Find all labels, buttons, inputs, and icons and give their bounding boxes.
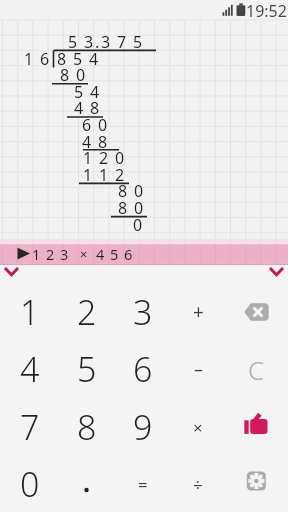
staticText: C (248, 352, 265, 387)
staticText: 0 (134, 180, 144, 202)
staticText: + (193, 299, 204, 325)
button[interactable]: 0 (4, 458, 56, 510)
staticText: 8 (118, 180, 128, 202)
staticText: 6 (82, 114, 92, 136)
staticText: 0 (76, 64, 86, 86)
staticText: 4 (20, 346, 40, 392)
button[interactable]: 1 (4, 286, 56, 338)
staticText: 3 (84, 31, 94, 53)
staticText: 5 (77, 346, 97, 392)
staticText: 1 (32, 244, 41, 264)
staticText: 1 (24, 48, 34, 70)
button[interactable] (61, 458, 113, 510)
staticText: = (138, 473, 148, 496)
staticText: 4 (89, 48, 99, 70)
staticText: 4 (90, 81, 100, 103)
button[interactable]: 4 (4, 343, 56, 395)
staticText: 5 (133, 31, 143, 53)
staticText: . (95, 31, 100, 53)
staticText: 4 (74, 97, 84, 119)
staticText: 8 (57, 48, 67, 70)
button[interactable]: – (172, 343, 224, 395)
staticText: 8 (98, 131, 108, 153)
button[interactable] (230, 286, 282, 338)
staticText: × (80, 245, 88, 263)
staticText: 6 (40, 48, 50, 70)
button[interactable]: 3 (117, 286, 169, 338)
staticText: 7 (117, 31, 127, 53)
button[interactable]: 2 (61, 286, 113, 338)
staticText: 6 (124, 244, 133, 264)
staticText: 9 (133, 404, 153, 450)
button[interactable]: = (117, 458, 169, 510)
staticText: 0 (133, 214, 143, 236)
staticText: 2 (99, 147, 109, 169)
staticText: 5 (110, 244, 119, 264)
button[interactable] (230, 401, 282, 453)
staticText: 8 (77, 404, 97, 450)
button[interactable] (264, 263, 288, 281)
button[interactable]: 8 (61, 401, 113, 453)
button[interactable] (230, 458, 282, 510)
staticText: 8 (60, 64, 70, 86)
button[interactable] (0, 239, 288, 265)
staticText: 8 (90, 97, 100, 119)
staticText: 6 (133, 346, 153, 392)
staticText: 1 (83, 147, 93, 169)
staticText: 3 (60, 244, 69, 264)
staticText: 8 (118, 197, 128, 219)
staticText: 19:52 (246, 0, 287, 20)
staticText: 3 (101, 31, 111, 53)
staticText: 7 (20, 404, 40, 450)
button[interactable]: 9 (117, 401, 169, 453)
staticText: 0 (115, 147, 125, 169)
staticText: 1 (99, 164, 109, 186)
staticText: ÷ (193, 473, 203, 496)
staticText: 0 (134, 197, 144, 219)
button[interactable]: 7 (4, 401, 56, 453)
staticText: 4 (96, 244, 105, 264)
button[interactable]: C (230, 343, 282, 395)
staticText: 5 (68, 31, 78, 53)
button[interactable]: 6 (117, 343, 169, 395)
staticText: 2 (46, 244, 55, 264)
staticText: 0 (98, 114, 108, 136)
staticText: 5 (73, 48, 83, 70)
button[interactable] (0, 263, 24, 281)
staticText: 0 (20, 461, 40, 507)
button[interactable]: 5 (61, 343, 113, 395)
staticText: 1 (83, 164, 93, 186)
button[interactable]: + (172, 286, 224, 338)
staticText: 1 (20, 289, 40, 335)
staticText: 2 (77, 289, 97, 335)
button[interactable]: × (172, 401, 224, 453)
button[interactable]: ÷ (172, 458, 224, 510)
staticText: 3 (133, 289, 153, 335)
staticText: × (193, 416, 203, 439)
staticText: 2 (115, 164, 125, 186)
staticText: 4 (82, 131, 92, 153)
staticText: – (194, 357, 203, 382)
staticText: 5 (74, 81, 84, 103)
